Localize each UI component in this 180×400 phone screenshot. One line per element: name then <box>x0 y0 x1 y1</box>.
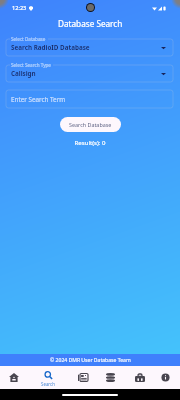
staticText: 12:23 <box>12 4 27 12</box>
staticText: Database Search <box>58 18 123 29</box>
button[interactable]: Home <box>1 366 27 389</box>
button[interactable]: Enter Search Term <box>6 90 173 108</box>
button[interactable]: Contacts <box>70 366 96 389</box>
button[interactable]: Search RadioID Database <box>6 39 173 56</box>
button[interactable]: Search <box>35 366 61 389</box>
staticText: © 2024 DMR User Database Team <box>50 357 131 364</box>
staticText: Enter Search Term <box>11 95 66 104</box>
staticText: Search RadioID Database <box>11 43 90 52</box>
staticText: Search Database <box>69 121 112 128</box>
button[interactable]: Callsign <box>6 65 173 82</box>
staticText: Callsign <box>11 69 36 78</box>
button[interactable]: Info <box>152 366 178 389</box>
button[interactable]: Tools <box>127 366 153 389</box>
staticText: Search <box>41 381 55 387</box>
staticText: Select Database <box>11 36 46 42</box>
staticText: Result(s): 0 <box>0 138 180 146</box>
button[interactable]: Database <box>97 366 123 389</box>
staticText: Select Search Type <box>11 62 51 68</box>
button[interactable]: Search Database <box>60 117 121 132</box>
